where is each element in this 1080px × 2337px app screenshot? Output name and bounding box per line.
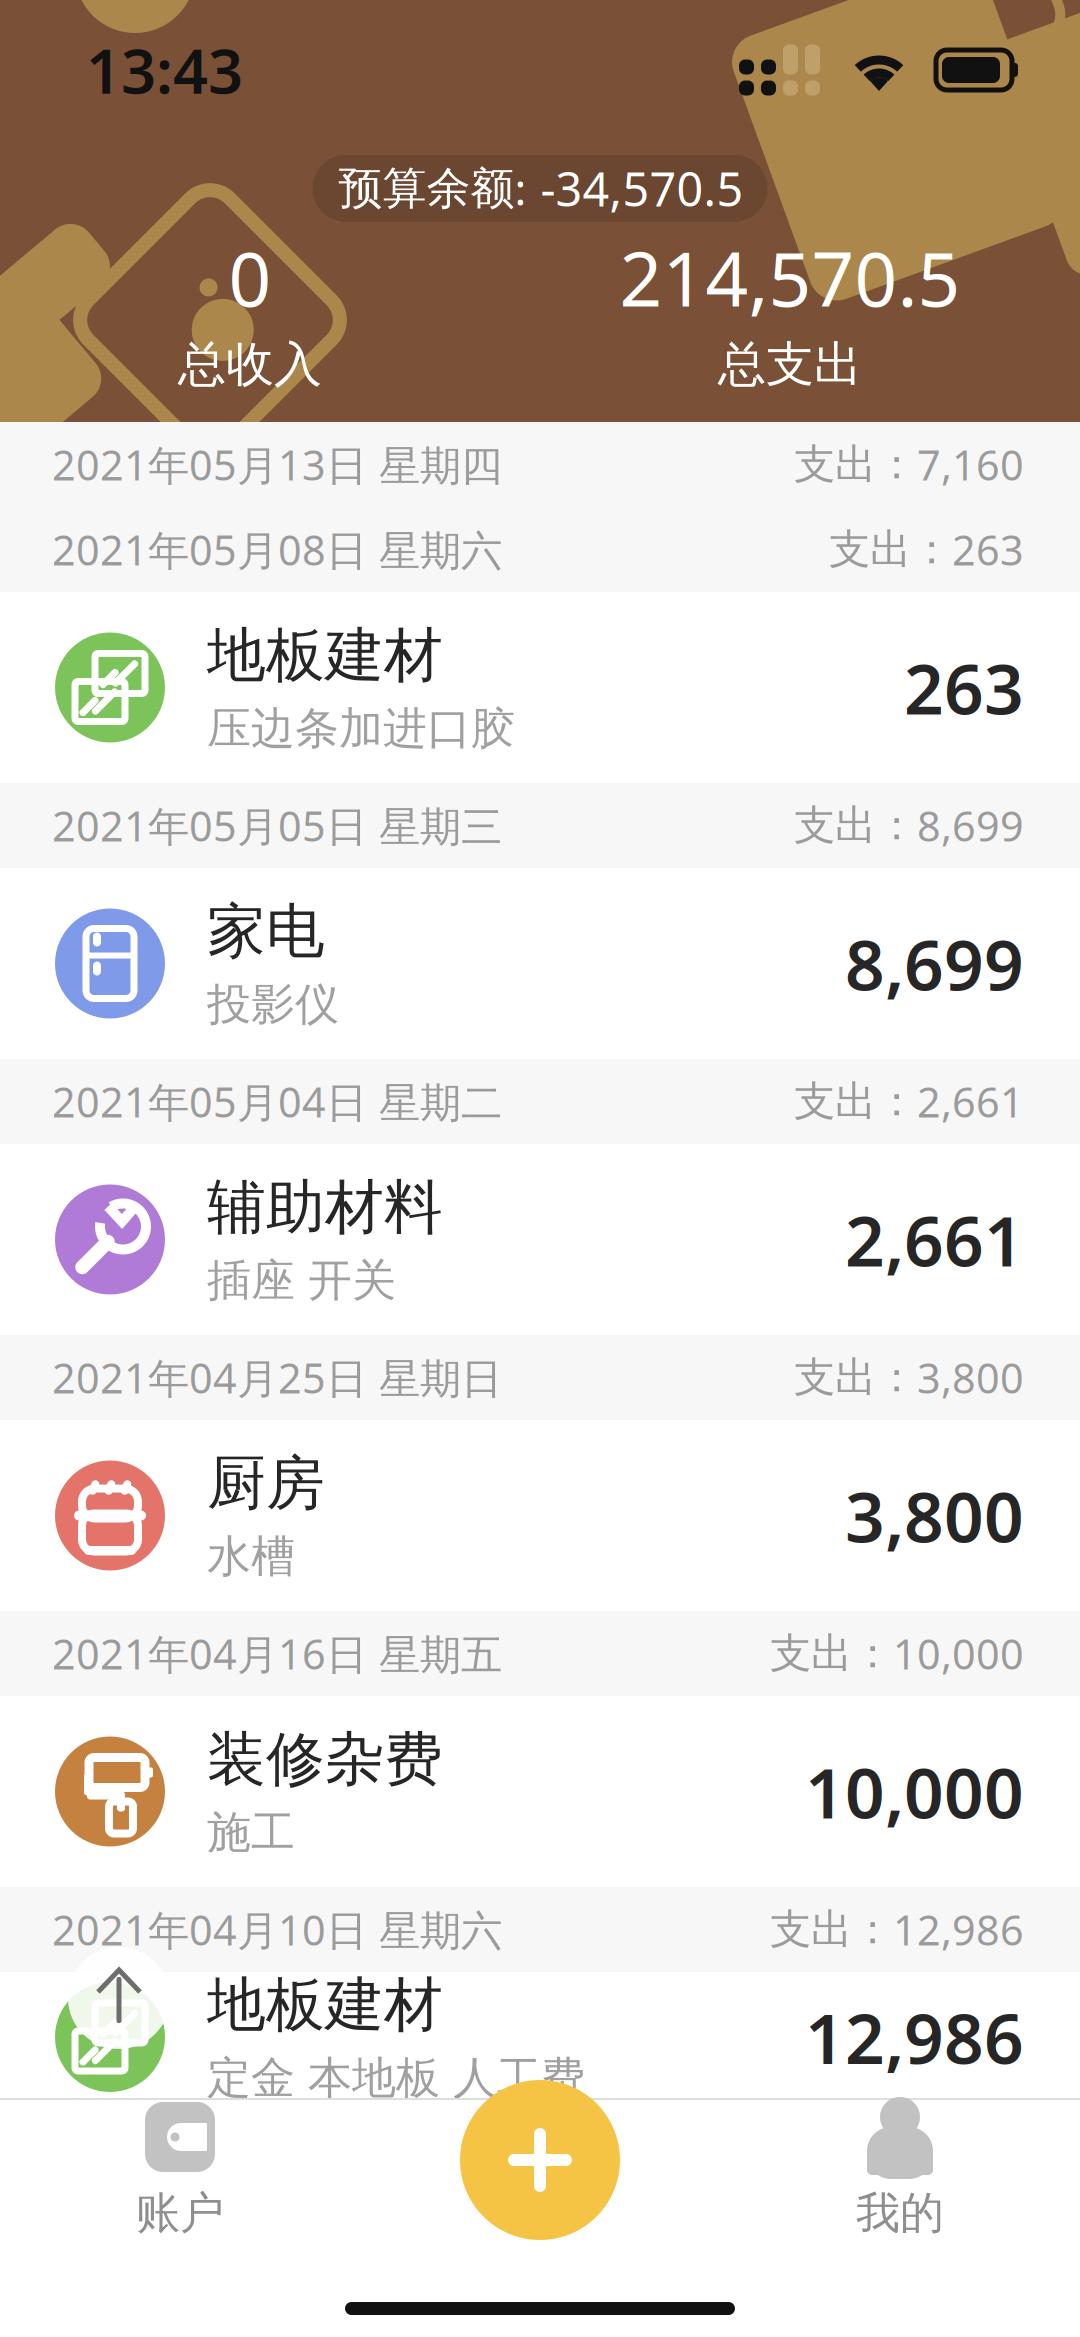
button[interactable]: 家电 [0, 868, 1080, 1059]
staticText: 插座 开关 [207, 1253, 396, 1307]
staticText: 厨房 [207, 1447, 325, 1519]
staticText: 总收入 [178, 335, 322, 394]
staticText: 263 [952, 522, 1024, 577]
staticText: 辅助材料 [207, 1171, 443, 1243]
staticText: 2021年05月05日 星期三 [52, 798, 502, 853]
staticText: 8,699 [917, 798, 1024, 853]
button[interactable]: Scroll to top [68, 1947, 170, 2049]
staticText: 3,800 [917, 1350, 1024, 1405]
staticText: 压边条加进口胶 [207, 701, 515, 755]
staticText: 我的 [856, 2186, 944, 2240]
button[interactable]: Add transaction [460, 2080, 620, 2240]
staticText: 支出： [770, 1628, 893, 1679]
button[interactable]: 我的 [720, 2100, 1080, 2242]
staticText: 总支出 [718, 335, 862, 394]
staticText: 2021年05月04日 星期二 [52, 1074, 502, 1129]
button[interactable]: 厨房 [0, 1420, 1080, 1611]
staticText: 214,570.5 [619, 228, 960, 327]
staticText: 12,986 [893, 1902, 1024, 1957]
staticText: 账户 [136, 2186, 224, 2240]
staticText: 10,000 [805, 1745, 1024, 1838]
staticText: 2,661 [845, 1193, 1024, 1286]
staticText: 支出： [794, 1076, 917, 1127]
button[interactable]: 装修杂费 [0, 1696, 1080, 1887]
button[interactable]: 地板建材 [0, 592, 1080, 783]
staticText: 预算余额 [338, 161, 514, 215]
staticText: 装修杂费 [207, 1723, 443, 1795]
staticText: 8,699 [845, 917, 1024, 1010]
button[interactable]: 地板建材 [0, 1972, 1080, 2102]
staticText: 13:43 [86, 29, 243, 111]
button[interactable]: 辅助材料 [0, 1144, 1080, 1335]
staticText: 2021年04月16日 星期五 [52, 1626, 502, 1681]
staticText: -34,570.5 [540, 157, 743, 219]
staticText: 2021年04月10日 星期六 [52, 1902, 502, 1957]
staticText: 地板建材 [207, 619, 443, 691]
staticText: 2021年05月13日 星期四 [52, 437, 502, 492]
button[interactable]: 账户 [0, 2100, 360, 2242]
staticText: 10,000 [893, 1626, 1024, 1681]
staticText: 支出： [770, 1904, 893, 1955]
staticText: 施工 [207, 1805, 295, 1859]
staticText: 3,800 [845, 1469, 1024, 1562]
staticText: 支出： [794, 1352, 917, 1403]
staticText: 2021年05月08日 星期六 [52, 522, 502, 577]
staticText: 2021年04月25日 星期日 [52, 1350, 502, 1405]
staticText: 2,661 [917, 1074, 1024, 1129]
staticText: 0 [228, 228, 271, 327]
staticText: 投影仪 [207, 977, 339, 1031]
staticText: 定金 本地板 人工费 [207, 2051, 585, 2105]
staticText: 地板建材 [207, 1969, 443, 2041]
staticText: 家电 [207, 895, 325, 967]
staticText: 支出： [794, 439, 917, 490]
staticText: 水槽 [207, 1529, 295, 1583]
staticText: 支出： [829, 524, 952, 575]
staticText: 7,160 [917, 437, 1024, 492]
staticText: : [514, 159, 526, 218]
staticText: 支出： [794, 800, 917, 851]
staticText: 263 [904, 641, 1024, 734]
staticText: 12,986 [805, 1991, 1024, 2083]
